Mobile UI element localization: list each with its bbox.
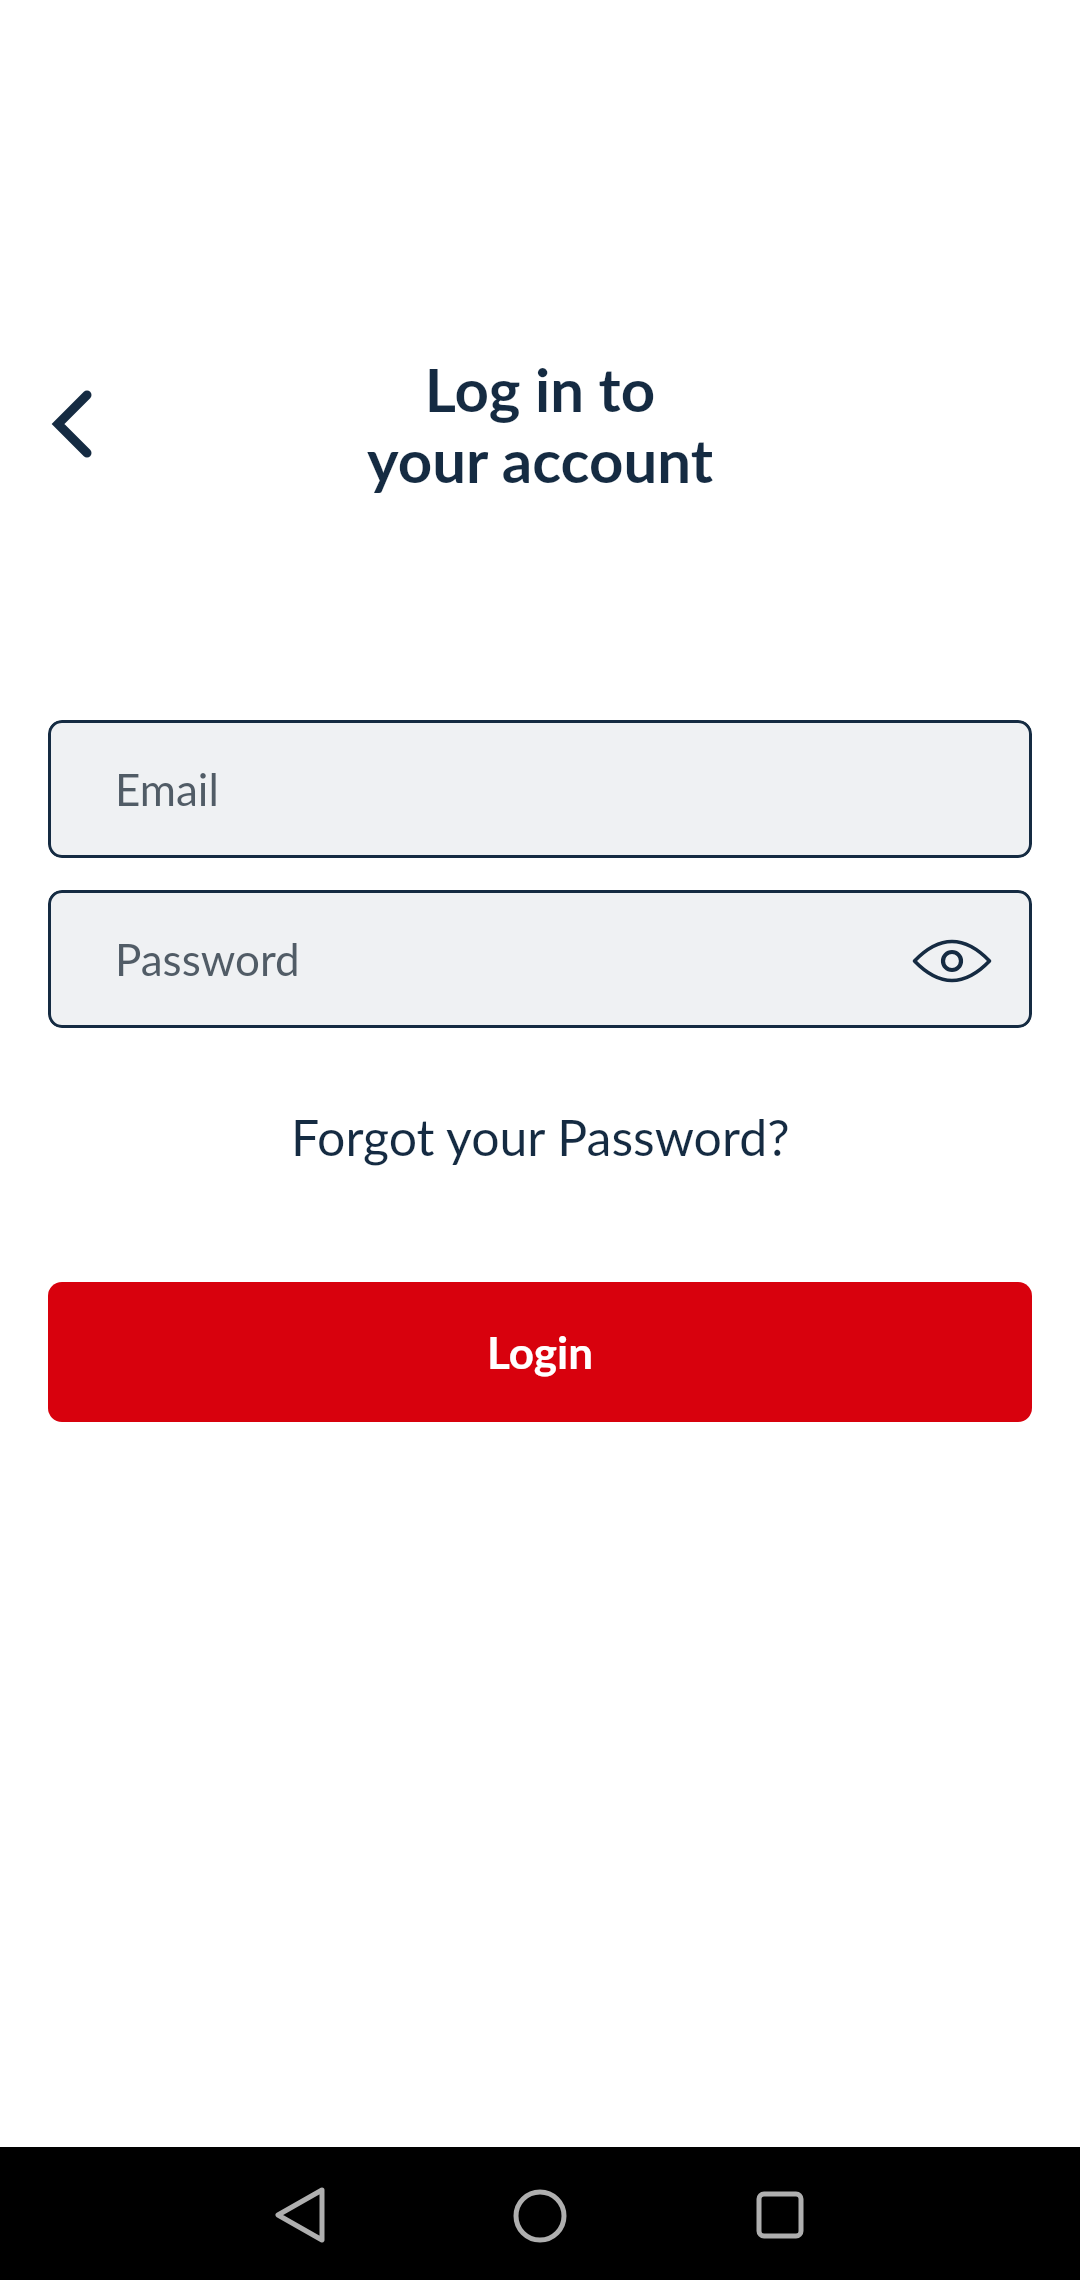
- button[interactable]: [28, 379, 116, 467]
- button[interactable]: [250, 2165, 350, 2265]
- button[interactable]: [730, 2165, 830, 2265]
- button[interactable]: Email: [48, 720, 1032, 858]
- button[interactable]: [892, 899, 1012, 1019]
- staticText: Log in to your account: [0, 353, 1080, 496]
- staticText: Forgot your Password?: [291, 1107, 790, 1167]
- button[interactable]: Login: [48, 1282, 1032, 1422]
- staticText: Login: [487, 1326, 594, 1379]
- button[interactable]: [490, 2166, 590, 2266]
- button[interactable]: Forgot your Password?: [291, 1107, 790, 1167]
- staticText: Email: [115, 763, 219, 816]
- staticText: Password: [115, 933, 300, 986]
- button[interactable]: Password: [48, 890, 1032, 1028]
